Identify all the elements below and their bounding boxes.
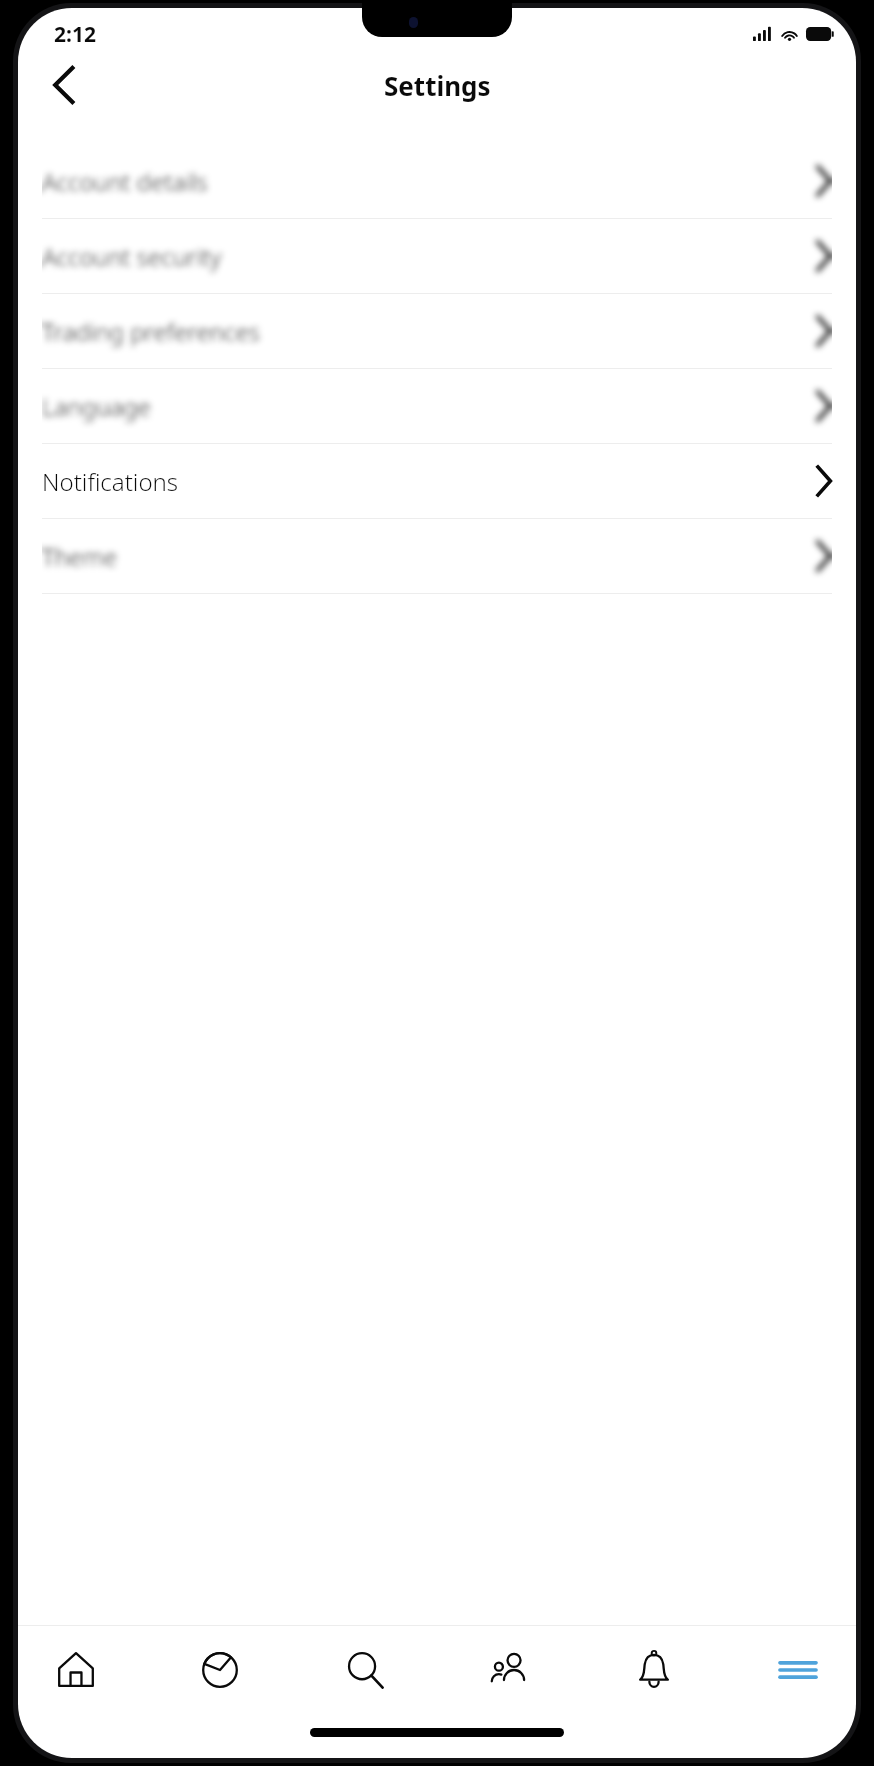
button[interactable]: Language [18,369,856,443]
staticText: Settings [384,68,491,103]
staticText: Theme [42,540,117,573]
staticText: 2:12 [54,20,96,49]
button[interactable]: Alerts [610,1630,698,1710]
button[interactable]: Search [321,1630,409,1710]
button[interactable]: Home [32,1630,120,1710]
button[interactable]: Theme [18,519,856,593]
button[interactable]: Notifications [18,444,856,518]
button[interactable]: Account details [18,144,856,218]
staticText: Trading preferences [42,315,260,348]
staticText: Account details [42,165,208,198]
button[interactable]: Back [38,59,90,111]
staticText: Notifications [42,465,179,498]
button[interactable]: Community [465,1630,553,1710]
button[interactable]: Menu [754,1630,842,1710]
button[interactable]: Account security [18,219,856,293]
button[interactable]: Trading preferences [18,294,856,368]
staticText: Language [42,390,151,423]
button[interactable]: Portfolio [176,1630,264,1710]
staticText: Account security [42,240,222,273]
